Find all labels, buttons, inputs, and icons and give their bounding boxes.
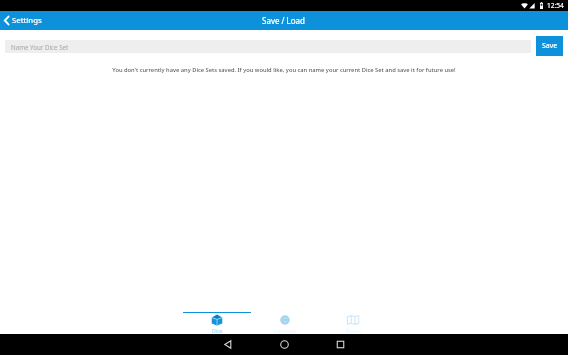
- button[interactable]: Board: [319, 305, 387, 334]
- button[interactable]: Save: [536, 36, 563, 56]
- staticText: Name Your Dice Set: [11, 43, 69, 51]
- staticText: You don't currently have any Dice Sets s…: [0, 66, 568, 74]
- button[interactable]: Home: [256, 334, 312, 355]
- staticText: Dice: [212, 327, 223, 334]
- button[interactable]: Summary: [251, 305, 319, 334]
- staticText: Board: [346, 327, 361, 334]
- staticText: Summary: [273, 327, 297, 334]
- button[interactable]: Back: [200, 334, 256, 355]
- button[interactable]: Name Your Dice Set: [5, 40, 531, 53]
- button[interactable]: Settings: [0, 11, 48, 30]
- button[interactable]: Dice: [183, 305, 251, 334]
- staticText: Settings: [12, 15, 42, 26]
- staticText: Save: [542, 41, 558, 51]
- staticText: 12:54: [547, 1, 564, 10]
- staticText: Save / Load: [262, 15, 306, 26]
- button[interactable]: Recents: [312, 334, 368, 355]
